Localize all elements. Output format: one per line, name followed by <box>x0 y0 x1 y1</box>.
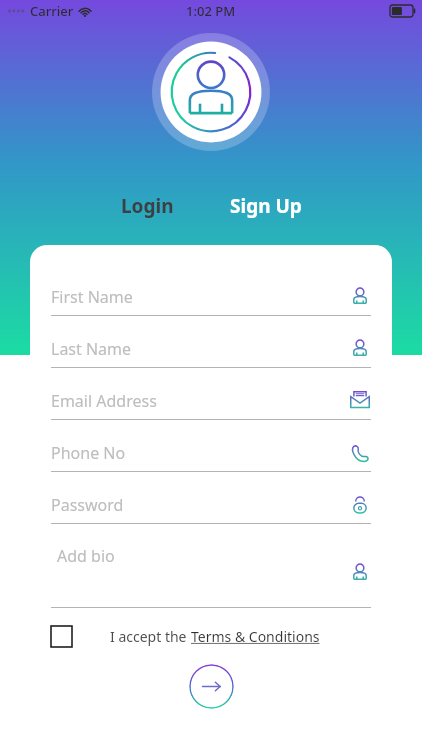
staticText: 1:02 PM <box>186 2 236 20</box>
button[interactable]: Accept terms checkbox <box>51 626 72 647</box>
staticText: Carrier <box>30 2 74 20</box>
button[interactable]: Password <box>51 486 371 524</box>
button[interactable]: Submit sign up <box>189 664 234 709</box>
button[interactable]: I accept the <box>108 625 322 648</box>
staticText: Sign Up <box>230 193 302 219</box>
other: Last Name <box>349 338 371 360</box>
staticText: First Name <box>51 286 349 308</box>
button[interactable]: Add bio <box>51 538 371 608</box>
other: Phone No <box>349 442 371 464</box>
button[interactable]: First Name <box>51 278 371 316</box>
staticText: Last Name <box>51 338 349 360</box>
other: Password <box>349 494 371 516</box>
button[interactable]: Last Name <box>51 330 371 368</box>
staticText: Terms & Conditions <box>191 627 320 646</box>
other: Add bio <box>349 562 371 584</box>
staticText: Password <box>51 494 349 516</box>
staticText: I accept the <box>110 627 191 646</box>
button[interactable]: Email Address <box>51 382 371 420</box>
staticText: Phone No <box>51 442 349 464</box>
staticText: Login <box>121 193 174 219</box>
button[interactable]: Phone No <box>51 434 371 472</box>
button[interactable]: Sign Up <box>220 189 312 223</box>
staticText: Add bio <box>57 545 115 567</box>
other: First Name <box>349 286 371 308</box>
button[interactable]: Login <box>111 189 184 223</box>
other: Email Address <box>349 390 371 412</box>
staticText: Email Address <box>51 390 349 412</box>
